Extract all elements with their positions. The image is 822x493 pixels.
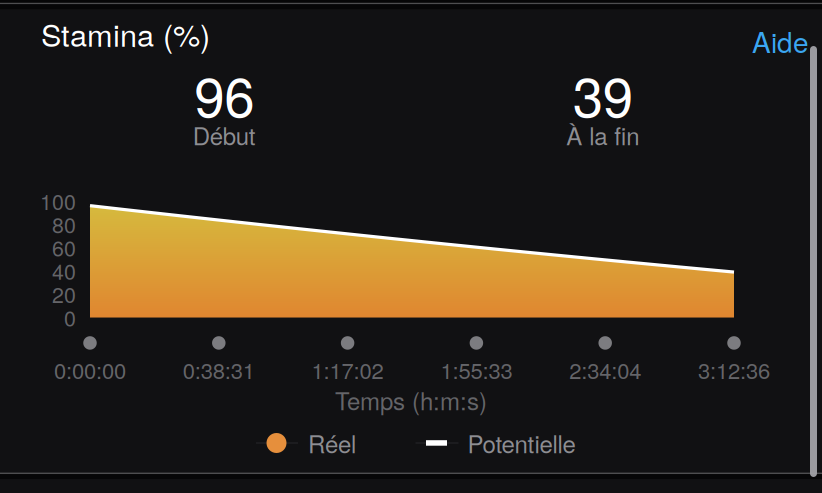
staticText: Début xyxy=(193,118,256,152)
staticText: 96 xyxy=(194,55,254,133)
staticText: 3:12:36 xyxy=(698,354,770,385)
staticText: Aide xyxy=(752,21,809,61)
staticText: Stamina (%) xyxy=(41,11,210,55)
staticText: 0:38:31 xyxy=(183,354,255,385)
staticText: 100 xyxy=(40,185,76,216)
staticText: 20 xyxy=(52,279,76,309)
button[interactable]: Potentielle xyxy=(415,430,581,456)
staticText: 39 xyxy=(573,55,633,133)
staticText: 2:34:04 xyxy=(569,354,641,385)
staticText: 0 xyxy=(64,302,76,332)
staticText: 40 xyxy=(52,255,76,286)
staticText: 1:17:02 xyxy=(312,354,384,385)
button[interactable]: Aide xyxy=(719,23,809,59)
staticText: 80 xyxy=(52,209,76,239)
staticText: 60 xyxy=(52,232,76,262)
staticText: À la fin xyxy=(566,118,639,152)
staticText: 0:00:00 xyxy=(54,354,126,385)
staticText: Potentielle xyxy=(467,426,575,460)
staticText: 1:55:33 xyxy=(440,354,512,385)
staticText: Temps (h:m:s) xyxy=(335,383,487,417)
staticText: Réel xyxy=(308,426,356,460)
button[interactable]: Réel xyxy=(256,430,356,456)
